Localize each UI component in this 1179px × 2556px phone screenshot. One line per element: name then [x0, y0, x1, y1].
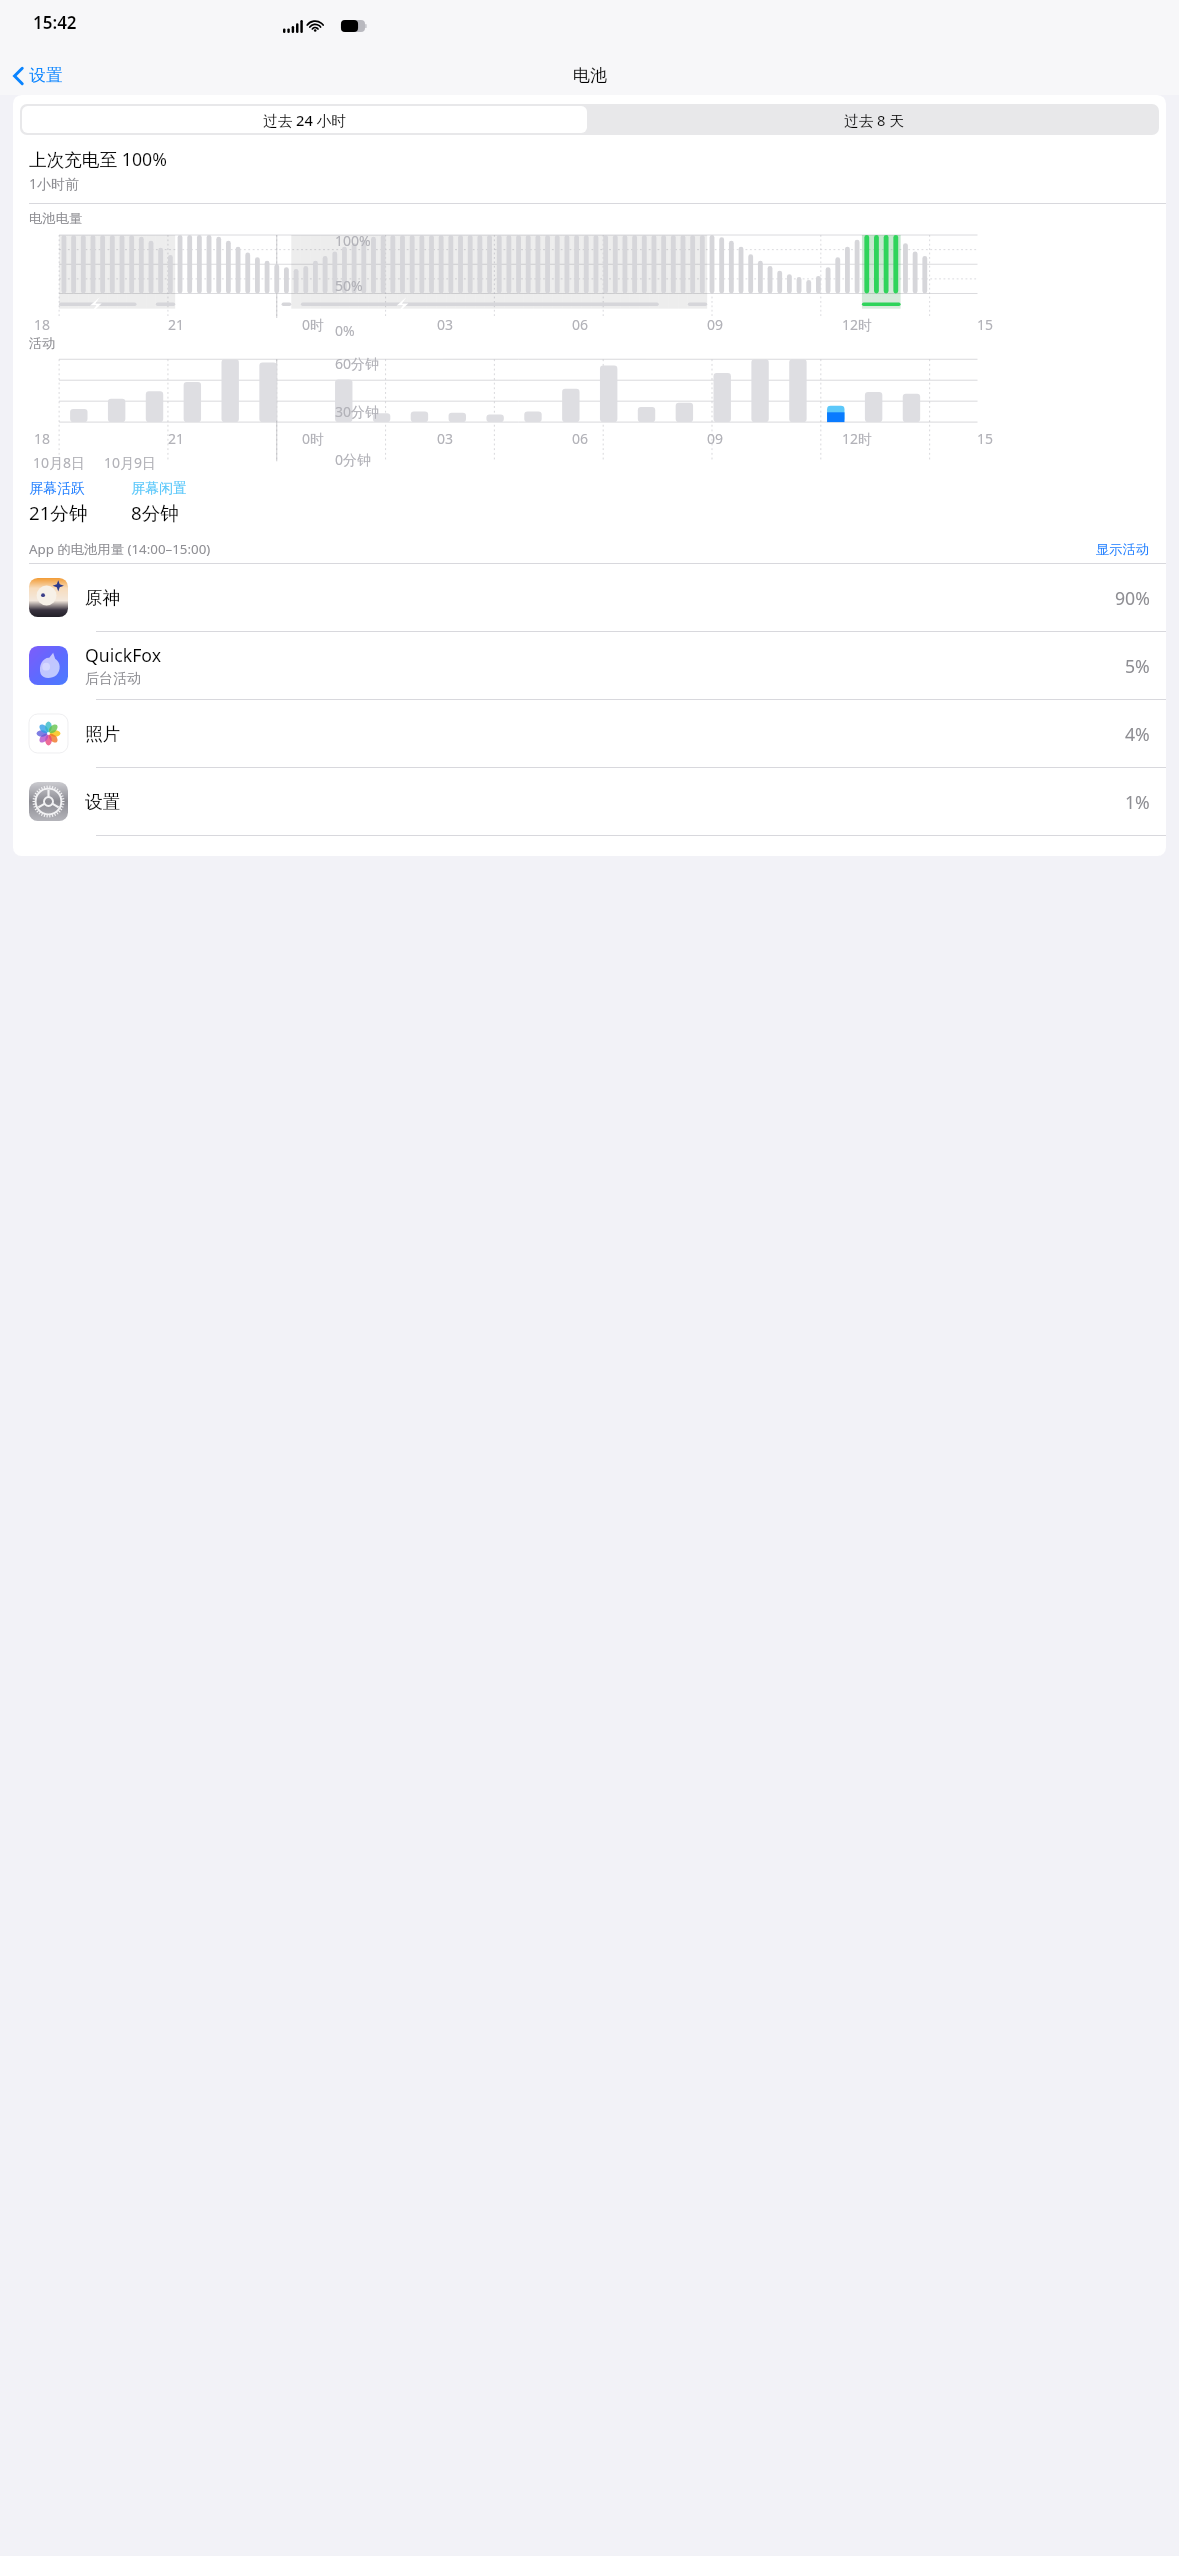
- staticText: 09: [707, 315, 724, 334]
- staticText: 屏幕闲置: [131, 480, 187, 498]
- staticText: 电池电量: [29, 210, 83, 227]
- staticText: 15: [977, 429, 994, 448]
- staticText: 03: [437, 429, 454, 448]
- staticText: 1小时前: [29, 174, 80, 193]
- staticText: 06: [572, 429, 589, 448]
- staticText: 12时: [842, 429, 873, 448]
- staticText: 100%: [335, 231, 371, 250]
- staticText: 03: [437, 315, 454, 334]
- staticText: 显示活动: [1096, 541, 1150, 558]
- staticText: 50%: [335, 276, 363, 295]
- other: 原神: [29, 578, 68, 617]
- staticText: 4%: [1125, 722, 1150, 746]
- staticText: 0时: [302, 429, 325, 448]
- staticText: 15:42: [33, 11, 77, 34]
- staticText: 21: [168, 315, 185, 334]
- staticText: 90%: [1115, 586, 1150, 610]
- staticText: 15: [977, 315, 994, 334]
- staticText: 60分钟: [335, 354, 380, 373]
- button[interactable]: 设置: [0, 61, 71, 90]
- staticText: App 的电池用量 (14:00–15:00): [29, 540, 211, 558]
- button[interactable]: 过去 8 天: [589, 104, 1159, 135]
- staticText: 5%: [1125, 654, 1150, 678]
- button[interactable]: QuickFox: [13, 632, 1166, 699]
- staticText: 0%: [335, 321, 355, 340]
- staticText: 过去 8 天: [844, 110, 904, 130]
- button[interactable]: 过去 24 小时: [22, 106, 587, 133]
- staticText: 09: [707, 429, 724, 448]
- staticText: 21分钟: [29, 500, 88, 525]
- staticText: 0分钟: [335, 450, 372, 469]
- staticText: 过去 24 小时: [263, 110, 347, 130]
- staticText: 屏幕活跃: [29, 480, 85, 498]
- staticText: 06: [572, 315, 589, 334]
- staticText: 设置: [29, 65, 63, 86]
- button[interactable]: 原神: [13, 564, 1166, 631]
- staticText: 8分钟: [131, 500, 179, 525]
- staticText: 上次充电至 100%: [29, 147, 167, 171]
- other: 照片: [29, 714, 68, 753]
- staticText: 后台活动: [85, 670, 141, 688]
- staticText: 18: [34, 315, 51, 334]
- staticText: 30分钟: [335, 402, 380, 421]
- button[interactable]: 照片: [13, 700, 1166, 767]
- staticText: 0时: [302, 315, 325, 334]
- staticText: 电池: [573, 65, 607, 86]
- staticText: QuickFox: [85, 643, 161, 667]
- staticText: 12时: [842, 315, 873, 334]
- other: QuickFox: [29, 646, 68, 685]
- button[interactable]: 显示活动: [1096, 541, 1150, 558]
- staticText: 10月8日: [33, 453, 86, 472]
- staticText: 10月9日: [104, 453, 157, 472]
- staticText: 18: [34, 429, 51, 448]
- staticText: 原神: [85, 587, 121, 609]
- staticText: 1%: [1125, 790, 1150, 814]
- button[interactable]: 设置: [13, 768, 1166, 835]
- staticText: 活动: [29, 335, 56, 352]
- staticText: 设置: [85, 791, 121, 813]
- other: 设置: [29, 782, 68, 821]
- staticText: 照片: [85, 723, 121, 745]
- staticText: 21: [168, 429, 185, 448]
